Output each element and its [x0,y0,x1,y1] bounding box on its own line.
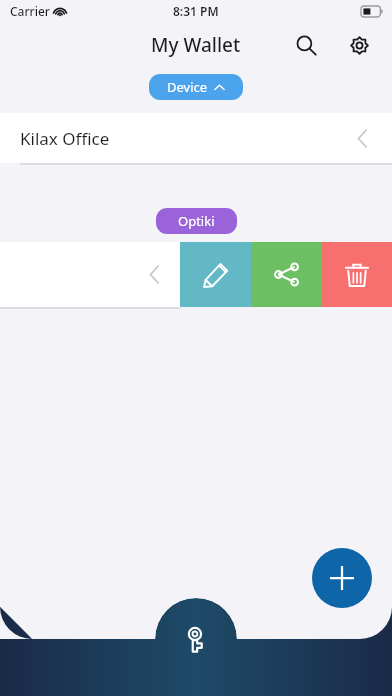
button[interactable]: Kilax Office [0,113,392,163]
staticText: Optiki [178,212,215,230]
button[interactable]: Settings [341,27,377,63]
button[interactable]: Delete [322,242,392,307]
button[interactable]: Share [251,242,322,307]
button[interactable]: Edit [180,242,251,307]
staticText: Carrier [10,3,50,19]
staticText: Kilax Office [20,127,110,150]
staticText: 8:31 PM [173,3,219,19]
button[interactable]: Device [149,74,243,100]
button[interactable]: Search [288,27,324,63]
button[interactable]: Keys [174,618,218,662]
button[interactable]: Optiki [156,208,237,234]
staticText: My Wallet [151,32,241,58]
button[interactable]: Add [312,548,372,608]
staticText: Device [167,78,208,96]
